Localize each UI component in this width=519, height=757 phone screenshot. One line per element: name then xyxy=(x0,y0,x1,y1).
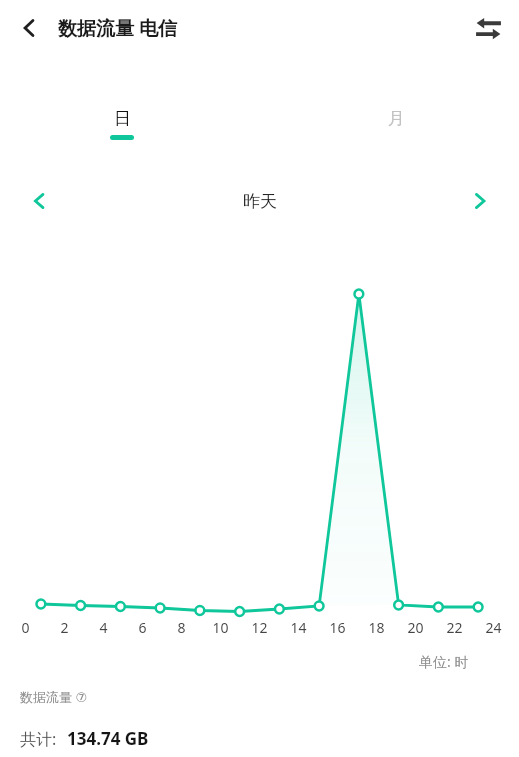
staticText: 共计: xyxy=(20,728,57,750)
staticText: 4 xyxy=(99,618,108,637)
staticText: 日 xyxy=(114,108,131,129)
button[interactable]: Next day xyxy=(457,178,503,224)
button[interactable]: 月 xyxy=(368,108,424,148)
staticText: 2 xyxy=(60,618,69,637)
staticText: 10 xyxy=(212,618,229,637)
staticText: 昨天 xyxy=(243,191,277,212)
staticText: 20 xyxy=(407,618,424,637)
button[interactable]: Previous day xyxy=(16,178,62,224)
staticText: 单位: 时 xyxy=(419,652,469,671)
button[interactable]: Back xyxy=(6,5,52,51)
staticText: 6 xyxy=(138,618,147,637)
staticText: 24 xyxy=(485,618,502,637)
staticText: 数据流量 ⑦ xyxy=(20,688,88,706)
staticText: 12 xyxy=(251,618,268,637)
staticText: 0 xyxy=(21,618,30,637)
staticText: 数据流量 电信 xyxy=(58,15,177,41)
staticText: 22 xyxy=(446,618,463,637)
staticText: 16 xyxy=(329,618,346,637)
staticText: 月 xyxy=(388,108,405,129)
button[interactable]: Switch direction xyxy=(465,5,511,51)
staticText: 8 xyxy=(177,618,186,637)
staticText: 134.74 GB xyxy=(67,727,149,750)
staticText: 18 xyxy=(368,618,385,637)
button[interactable]: 日 xyxy=(94,108,150,148)
staticText: 14 xyxy=(290,618,307,637)
